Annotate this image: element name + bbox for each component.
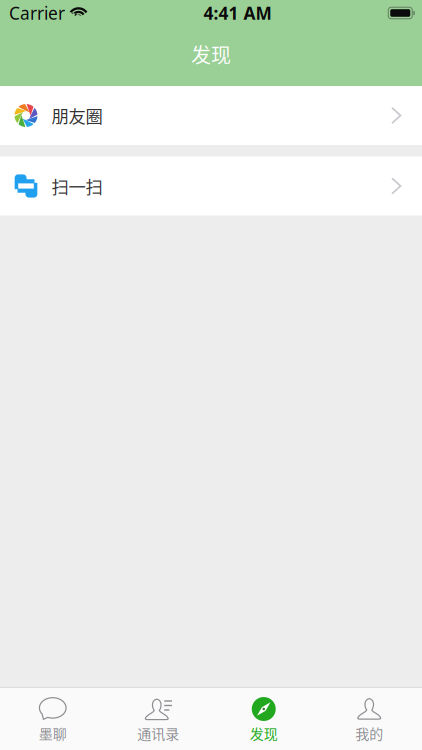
staticText: 4:41 AM	[203, 1, 271, 25]
button[interactable]: 通讯录	[105, 688, 211, 750]
button[interactable]: 发现	[211, 688, 316, 750]
staticText: Carrier	[9, 1, 65, 25]
staticText: 扫一扫	[51, 173, 102, 199]
staticText: 墨聊	[39, 723, 67, 743]
button[interactable]: 朋友圈	[0, 86, 422, 145]
button[interactable]: 扫一扫	[0, 156, 422, 215]
staticText: 朋友圈	[51, 103, 102, 128]
staticText: 发现	[191, 39, 231, 68]
staticText: 我的	[355, 723, 383, 743]
button[interactable]: 我的	[316, 688, 422, 750]
button[interactable]: 墨聊	[0, 688, 105, 750]
staticText: 通讯录	[137, 723, 179, 743]
staticText: 发现	[250, 723, 278, 743]
